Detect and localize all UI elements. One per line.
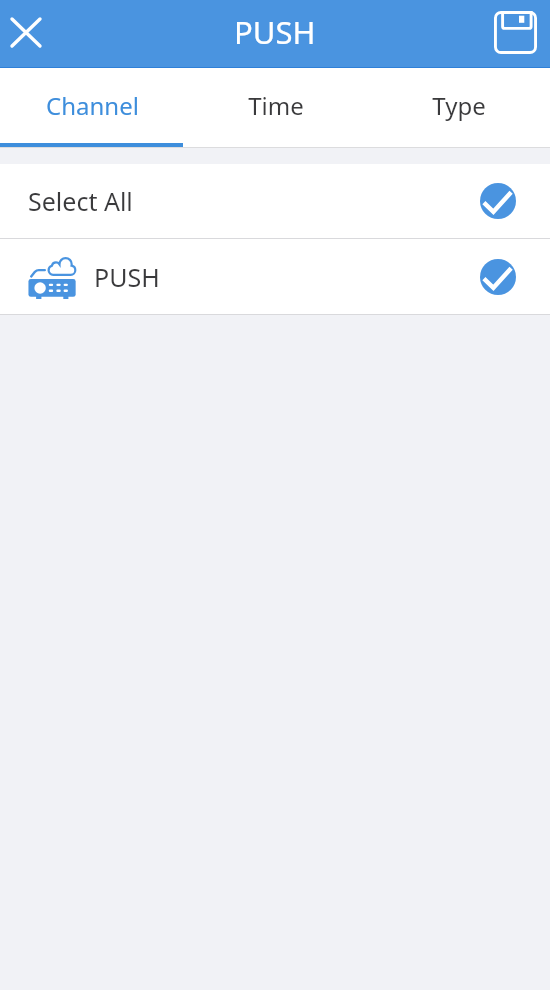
button[interactable]: PUSH bbox=[0, 239, 550, 314]
button[interactable]: Select All bbox=[0, 164, 550, 238]
staticText: Channel bbox=[46, 89, 139, 122]
staticText: Select All bbox=[28, 184, 133, 218]
button[interactable]: Time bbox=[184, 68, 367, 143]
button[interactable]: Close bbox=[4, 10, 48, 54]
button[interactable]: Channel bbox=[0, 68, 184, 143]
staticText: PUSH bbox=[234, 11, 316, 53]
button[interactable]: Selected bbox=[480, 259, 516, 295]
staticText: Type bbox=[432, 89, 486, 122]
button[interactable]: Type bbox=[367, 68, 550, 143]
button[interactable]: Save bbox=[487, 4, 543, 60]
staticText: Time bbox=[248, 89, 304, 122]
button[interactable]: Selected bbox=[480, 183, 516, 219]
staticText: PUSH bbox=[94, 260, 160, 294]
